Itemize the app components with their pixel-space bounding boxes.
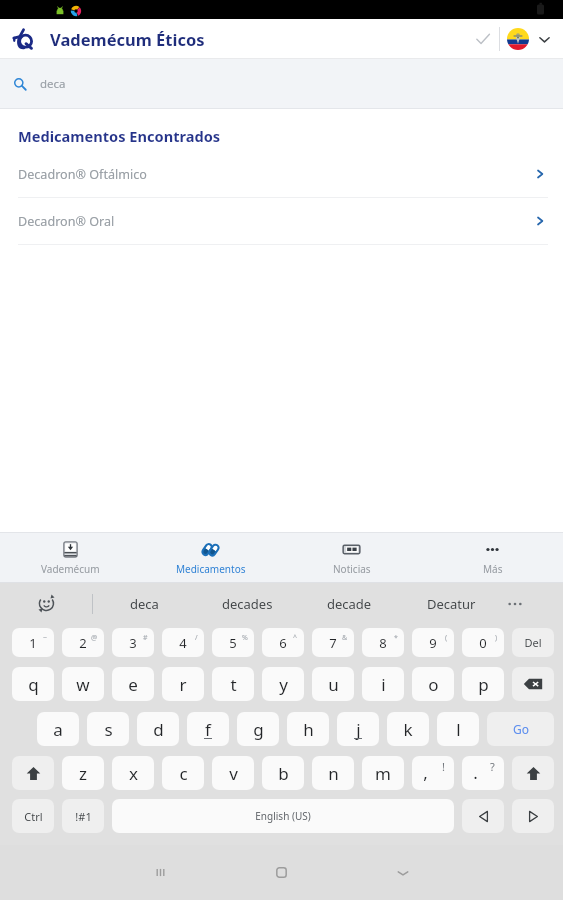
button[interactable]: 9 xyxy=(412,628,454,657)
button[interactable]: !#1 xyxy=(62,799,104,833)
button[interactable]: v xyxy=(212,756,254,790)
staticText: . xyxy=(473,761,478,784)
button[interactable]: deca xyxy=(0,59,563,109)
staticText: 8 xyxy=(379,634,387,652)
staticText: r xyxy=(179,673,187,696)
button[interactable]: 6 xyxy=(262,628,304,657)
staticText: l xyxy=(456,718,461,741)
staticText: 9 xyxy=(429,634,437,652)
staticText: ! xyxy=(442,759,445,774)
button[interactable]: decades xyxy=(196,583,298,624)
button[interactable]: , xyxy=(412,756,454,790)
staticText: Vademécum Éticos xyxy=(50,28,205,50)
button[interactable]: Del xyxy=(512,628,554,657)
button[interactable]: o xyxy=(412,667,454,701)
button[interactable]: i xyxy=(362,667,404,701)
staticText: j xyxy=(356,718,361,741)
button[interactable]: 0 xyxy=(462,628,504,657)
button[interactable]: Go xyxy=(487,712,554,746)
staticText: Decatur xyxy=(427,595,476,613)
button[interactable]: Cursor izquierda xyxy=(462,799,504,833)
button[interactable]: Ocultar teclado xyxy=(342,845,463,900)
button[interactable]: Aceptar xyxy=(467,23,499,55)
button[interactable]: 3 xyxy=(112,628,154,657)
staticText: 7 xyxy=(329,634,337,652)
staticText: p xyxy=(478,673,489,696)
staticText: o xyxy=(428,673,439,696)
button[interactable]: Más sugerencias xyxy=(502,583,563,624)
button[interactable]: Vademécum xyxy=(0,532,140,583)
staticText: f xyxy=(205,718,211,741)
button[interactable]: decade xyxy=(298,583,400,624)
button[interactable]: Recientes xyxy=(100,845,221,900)
staticText: 1 xyxy=(29,634,37,652)
button[interactable]: 4 xyxy=(162,628,204,657)
button[interactable]: Decadron® Oftálmico xyxy=(0,151,563,197)
button[interactable]: j xyxy=(337,712,379,746)
button[interactable]: 7 xyxy=(312,628,354,657)
button[interactable]: a xyxy=(37,712,79,746)
staticText: m xyxy=(375,762,391,785)
button[interactable]: Mayúsculas xyxy=(512,756,554,790)
staticText: 2 xyxy=(79,634,87,652)
staticText: q xyxy=(28,673,39,696)
button[interactable]: Medicamentos xyxy=(140,532,281,583)
button[interactable]: Más xyxy=(422,532,563,583)
button[interactable]: 1 xyxy=(12,628,54,657)
staticText: i xyxy=(381,673,386,696)
button[interactable]: 8 xyxy=(362,628,404,657)
staticText: n xyxy=(328,762,339,785)
button[interactable]: d xyxy=(137,712,179,746)
staticText: 6 xyxy=(279,634,287,652)
button[interactable]: . xyxy=(462,756,504,790)
button[interactable]: t xyxy=(212,667,254,701)
staticText: / xyxy=(195,633,198,643)
button[interactable]: English (US) xyxy=(112,799,454,833)
button[interactable]: e xyxy=(112,667,154,701)
button[interactable]: s xyxy=(87,712,129,746)
staticText: 4 xyxy=(179,634,187,652)
button[interactable]: Ctrl xyxy=(12,799,54,833)
button[interactable]: l xyxy=(437,712,479,746)
button[interactable]: Cursor derecha xyxy=(512,799,554,833)
button[interactable]: q xyxy=(12,667,54,701)
button[interactable]: r xyxy=(162,667,204,701)
button[interactable]: x xyxy=(112,756,154,790)
staticText: @ xyxy=(91,633,98,643)
staticText: w xyxy=(76,673,90,696)
staticText: deca xyxy=(40,76,66,92)
button[interactable]: Retroceso xyxy=(512,667,554,701)
button[interactable]: g xyxy=(237,712,279,746)
button[interactable]: Inicio xyxy=(221,845,342,900)
button[interactable]: 2 xyxy=(62,628,104,657)
button[interactable]: z xyxy=(62,756,104,790)
button[interactable]: k xyxy=(387,712,429,746)
button[interactable]: Seleccionar país xyxy=(507,28,529,50)
button[interactable]: Noticias xyxy=(281,532,422,583)
staticText: , xyxy=(423,761,428,784)
button[interactable]: w xyxy=(62,667,104,701)
button[interactable]: Mayúsculas xyxy=(12,756,54,790)
staticText: s xyxy=(104,718,113,741)
staticText: Más xyxy=(483,562,503,576)
button[interactable]: p xyxy=(462,667,504,701)
button[interactable]: deca xyxy=(93,583,196,624)
button[interactable]: c xyxy=(162,756,204,790)
button[interactable]: h xyxy=(287,712,329,746)
button[interactable]: Decadron® Oral xyxy=(0,198,563,244)
button[interactable]: m xyxy=(362,756,404,790)
button[interactable]: 5 xyxy=(212,628,254,657)
button[interactable]: f xyxy=(187,712,229,746)
button[interactable]: Abrir menú xyxy=(532,27,556,51)
staticText: ( xyxy=(445,633,448,643)
button[interactable]: n xyxy=(312,756,354,790)
staticText: b xyxy=(278,762,289,785)
button[interactable]: b xyxy=(262,756,304,790)
button[interactable]: Decatur xyxy=(400,583,502,624)
staticText: d xyxy=(153,718,164,741)
staticText: v xyxy=(229,762,238,785)
button[interactable]: Emoji xyxy=(0,583,92,624)
staticText: h xyxy=(303,718,314,741)
button[interactable]: y xyxy=(262,667,304,701)
button[interactable]: u xyxy=(312,667,354,701)
